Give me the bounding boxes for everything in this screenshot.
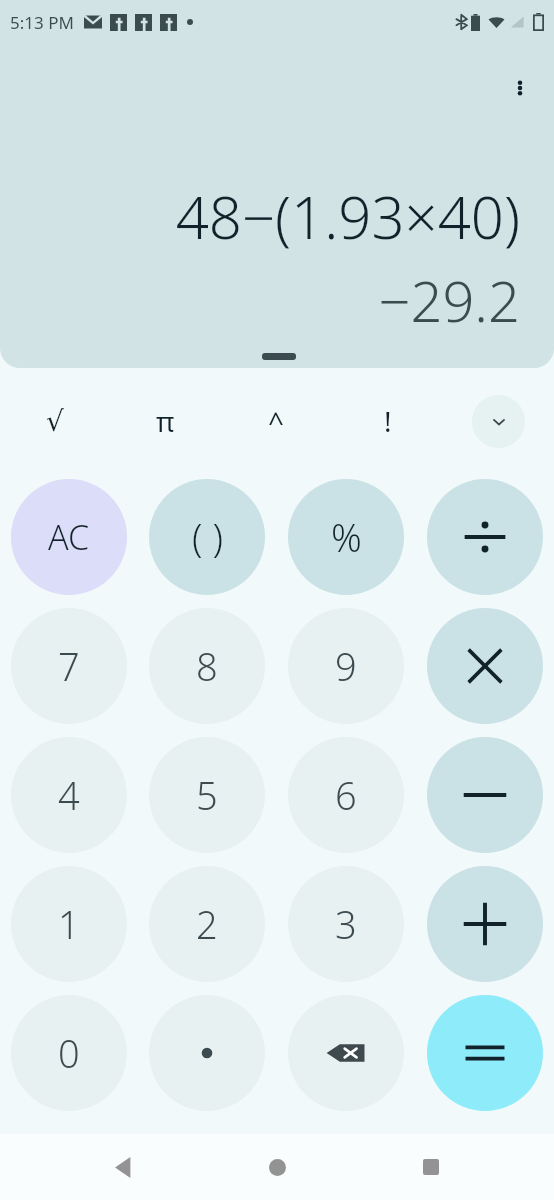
button[interactable]: 8 bbox=[149, 608, 265, 724]
button[interactable]: 4 bbox=[11, 737, 127, 853]
staticText: ^ bbox=[268, 402, 285, 440]
button[interactable]: 5 bbox=[149, 737, 265, 853]
staticText: % bbox=[331, 511, 362, 563]
staticText: 6 bbox=[335, 769, 357, 821]
staticText: 4 bbox=[58, 769, 80, 821]
button[interactable]: Subtract bbox=[427, 737, 543, 853]
button[interactable]: 1 bbox=[11, 866, 127, 982]
button[interactable]: π bbox=[110, 390, 221, 452]
button[interactable]: ( ) bbox=[149, 479, 265, 595]
button[interactable]: More options bbox=[494, 62, 546, 114]
button[interactable]: ! bbox=[332, 390, 443, 452]
button[interactable]: 6 bbox=[288, 737, 404, 853]
button[interactable]: % bbox=[288, 479, 404, 595]
button[interactable]: Collapse advanced pad bbox=[472, 395, 525, 448]
staticText: 5:13 PM bbox=[10, 11, 74, 34]
button[interactable]: 7 bbox=[11, 608, 127, 724]
button[interactable]: Add bbox=[427, 866, 543, 982]
button[interactable]: AC bbox=[11, 479, 127, 595]
button[interactable]: √ bbox=[0, 390, 110, 452]
button[interactable]: Divide bbox=[427, 479, 543, 595]
button[interactable]: ^ bbox=[221, 390, 332, 452]
staticText: √ bbox=[46, 405, 64, 438]
button[interactable]: Equals bbox=[427, 995, 543, 1111]
staticText: 9 bbox=[335, 640, 357, 692]
button[interactable]: 9 bbox=[288, 608, 404, 724]
staticText: 48−(1.93×40) bbox=[34, 177, 520, 256]
staticText: 3 bbox=[335, 898, 357, 950]
button[interactable]: Back bbox=[94, 1137, 154, 1197]
staticText: −29.2 bbox=[34, 262, 520, 338]
button[interactable]: Delete bbox=[288, 995, 404, 1111]
button[interactable]: 3 bbox=[288, 866, 404, 982]
button[interactable]: Recent apps bbox=[401, 1137, 461, 1197]
button[interactable]: Home bbox=[247, 1137, 307, 1197]
staticText: 0 bbox=[58, 1027, 80, 1079]
staticText: AC bbox=[48, 514, 90, 560]
staticText: π bbox=[156, 402, 175, 440]
staticText: 1 bbox=[58, 898, 80, 950]
staticText: 5 bbox=[196, 769, 218, 821]
staticText: 2 bbox=[196, 898, 218, 950]
button[interactable]: 2 bbox=[149, 866, 265, 982]
staticText: ( ) bbox=[192, 511, 223, 563]
staticText: 7 bbox=[58, 640, 80, 692]
staticText: 8 bbox=[196, 640, 218, 692]
button[interactable]: 0 bbox=[11, 995, 127, 1111]
staticText: ! bbox=[384, 402, 392, 440]
button[interactable]: Decimal point bbox=[149, 995, 265, 1111]
button[interactable]: Multiply bbox=[427, 608, 543, 724]
